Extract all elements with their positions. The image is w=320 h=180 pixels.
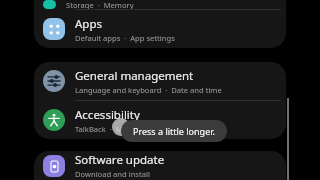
button[interactable]: Storage · Memory <box>34 0 286 9</box>
button[interactable]: Apps <box>34 10 286 48</box>
staticText: Press a little longer. <box>133 125 215 137</box>
staticText: Download and install <box>75 169 150 179</box>
staticText: Apps <box>75 16 103 32</box>
button[interactable]: General management <box>34 62 286 100</box>
staticText: Storage · Memory <box>66 0 134 9</box>
staticText: Default apps · App settings <box>75 33 175 43</box>
button[interactable]: Software update <box>34 151 286 180</box>
staticText: General management <box>75 68 194 84</box>
staticText: TalkBack · Mono audio <box>75 124 159 134</box>
staticText: Software update <box>75 152 165 168</box>
button[interactable]: Accessibility <box>34 101 286 139</box>
staticText: Language and keyboard · Date and time <box>75 85 222 95</box>
staticText: Accessibility <box>75 107 140 123</box>
